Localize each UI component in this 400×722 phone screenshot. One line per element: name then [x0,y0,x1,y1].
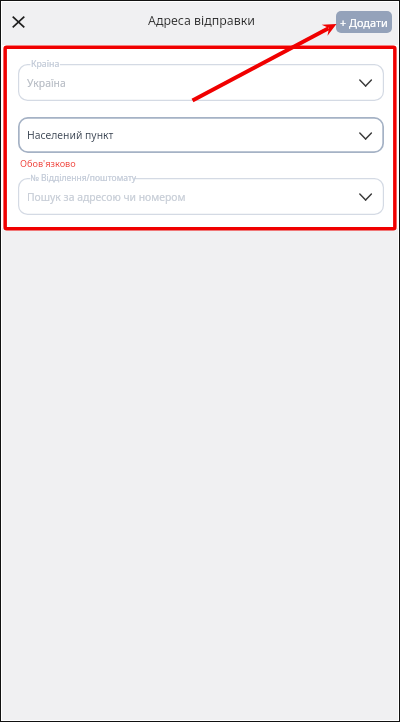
staticText: Населений пункт [27,128,114,142]
staticText: Обов'язково [20,157,76,170]
staticText: № Відділення/поштомату [30,172,137,184]
staticText: Україна [27,76,66,90]
other: Expand [359,132,373,141]
button[interactable]: Країна [18,64,384,101]
staticText: + Додати [340,15,388,30]
button[interactable]: + Додати [336,11,392,33]
button[interactable]: № Відділення/поштомату [18,178,384,215]
button[interactable]: Населений пункт [18,117,384,153]
other: Expand [359,193,373,202]
other: Expand [359,79,373,88]
staticText: Країна [31,58,60,70]
button[interactable]: Close [6,8,31,33]
staticText: Пошук за адресою чи номером [27,190,186,204]
staticText: Адреса відправки [148,12,255,29]
